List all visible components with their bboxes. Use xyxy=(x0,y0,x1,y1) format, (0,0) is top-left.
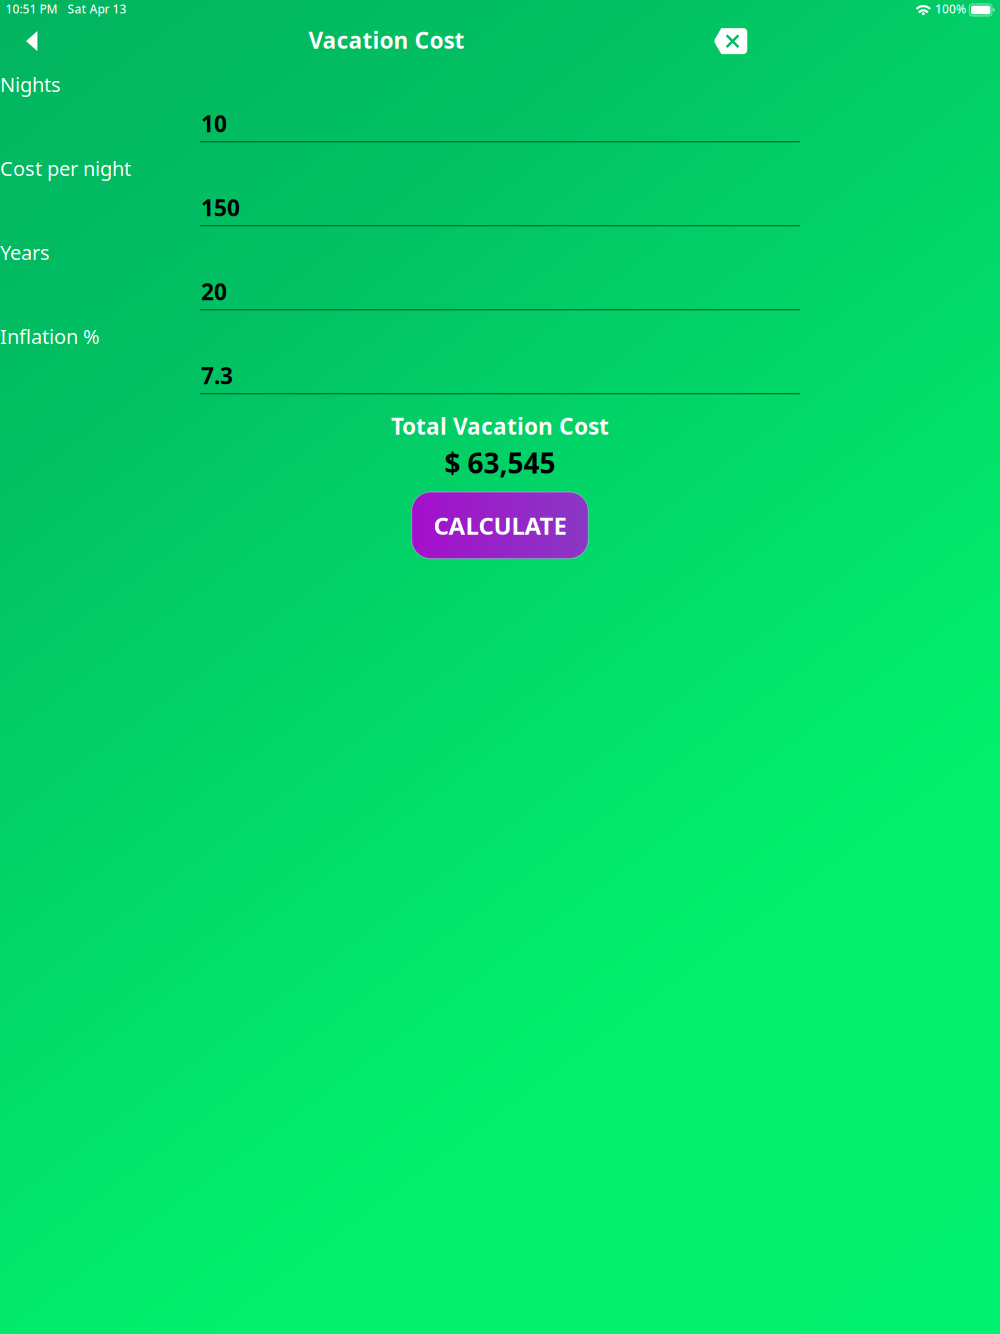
button[interactable]: 20 xyxy=(200,274,800,311)
button[interactable]: CALCULATE xyxy=(412,492,588,559)
button[interactable]: 10 xyxy=(200,106,800,143)
staticText: 10:51 PM xyxy=(6,1,58,17)
staticText: Total Vacation Cost xyxy=(391,411,609,441)
staticText: Years xyxy=(0,239,50,266)
staticText: Vacation Cost xyxy=(308,25,464,55)
staticText: CALCULATE xyxy=(433,509,566,541)
button[interactable]: 150 xyxy=(200,190,800,227)
button[interactable]: Vacation Cost xyxy=(308,25,464,55)
staticText: 100% xyxy=(935,1,966,17)
staticText: 7.3 xyxy=(201,360,233,390)
button[interactable]: 7.3 xyxy=(200,358,800,395)
staticText: 20 xyxy=(201,276,227,306)
button[interactable]: Clear xyxy=(708,19,752,63)
staticText: Nights xyxy=(0,71,61,98)
staticText: Sat Apr 13 xyxy=(67,1,126,17)
staticText: $ 63,545 xyxy=(444,444,555,481)
staticText: Cost per night xyxy=(0,155,131,182)
button[interactable]: Back xyxy=(10,19,54,63)
staticText: 150 xyxy=(201,192,240,222)
staticText: 10 xyxy=(201,108,227,138)
staticText: Inflation % xyxy=(0,323,100,350)
